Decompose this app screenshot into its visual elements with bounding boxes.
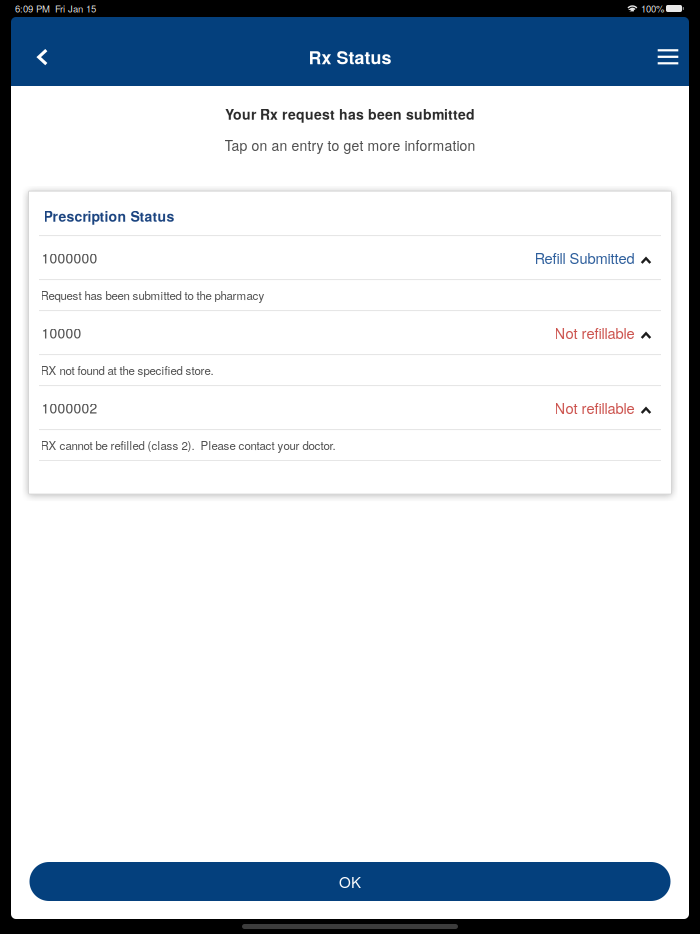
button[interactable]: Back [11,28,64,86]
button[interactable]: OK [29,862,670,901]
staticText: Tap on an entry to get more information [224,135,475,155]
staticText: Fri Jan 15 [55,2,96,15]
button[interactable]: 1000002 [29,386,670,429]
staticText: OK [339,871,361,892]
staticText: 1000000 [41,248,97,268]
staticText: RX cannot be refilled (class 2). Please … [40,437,335,453]
staticText: Your Rx request has been submitted [225,104,475,124]
button[interactable]: 10000 [29,311,670,354]
staticText: Not refillable [554,322,634,343]
staticText: Refill Submitted [534,247,634,268]
staticText: 1000002 [41,398,97,418]
staticText: RX not found at the specified store. [40,362,213,378]
staticText: Request has been submitted to the pharma… [40,287,264,303]
staticText: Not refillable [554,397,634,418]
staticText: 10000 [41,323,81,343]
button[interactable]: Menu [641,28,689,86]
staticText: 100% [641,2,664,15]
staticText: Rx Status [308,44,391,70]
staticText: 6:09 PM [15,2,50,15]
button[interactable]: 1000000 [29,236,670,279]
staticText: Prescription Status [43,206,174,226]
